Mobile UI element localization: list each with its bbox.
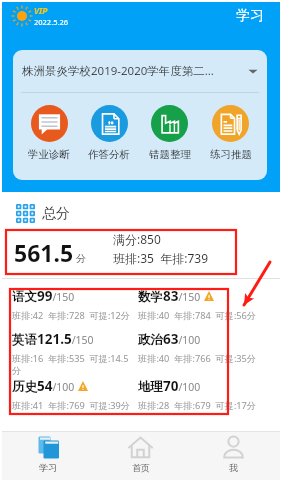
button[interactable]: 练习推题 (200, 105, 261, 161)
button[interactable]: 学业诊断 (19, 105, 79, 161)
staticText: 2022.5.26 (34, 17, 69, 27)
staticText: 561.5 分 (14, 237, 86, 268)
button[interactable]: 地理70/100 (138, 377, 276, 412)
staticText: 我 (229, 462, 238, 473)
staticText: 政治63/100 (138, 330, 201, 348)
button[interactable]: 政治63/100 (138, 330, 276, 365)
staticText: 班排:35 年排:739 (113, 250, 208, 266)
button[interactable]: 英语121.5/150 (12, 330, 134, 377)
staticText: 数学83/150 (138, 287, 201, 305)
staticText: 练习推题 (210, 148, 252, 161)
staticText: 学习 (39, 462, 57, 473)
staticText: 错题整理 (149, 148, 191, 161)
button[interactable]: 我 (187, 432, 280, 480)
button[interactable]: 历史54/100 (12, 377, 134, 412)
staticText: 班排:42 年排:728 可提:12分 (12, 309, 131, 322)
staticText: 英语121.5/150 (12, 330, 94, 348)
button[interactable]: 展开 (247, 65, 259, 77)
staticText: VIP (34, 5, 48, 17)
button[interactable]: 错题整理 (139, 105, 200, 161)
staticText: 班排:16 年排:535 可提:14.5分 (12, 352, 134, 377)
staticText: 班排:28 年排:679 可提:17分 (138, 399, 257, 412)
button[interactable]: 数学83/150 (138, 287, 276, 322)
staticText: 班排:41 年排:769 可提:39分 (12, 399, 131, 412)
staticText: 班排:40 年排:784 可提:56分 (138, 309, 257, 322)
staticText: 满分:850 (113, 231, 161, 247)
button[interactable]: 首页 (94, 432, 187, 480)
staticText: 首页 (132, 462, 150, 473)
button[interactable]: 语文99/150 (12, 287, 134, 322)
staticText: 班排:40 年排:766 可提:35分 (138, 352, 257, 365)
staticText: 总分 (42, 205, 70, 223)
other: 学习 (36, 435, 61, 460)
staticText: 语文99/150 (12, 287, 75, 305)
other: 我 (221, 435, 246, 460)
button[interactable]: 学习 (236, 7, 264, 25)
staticText: 作答分析 (88, 148, 130, 161)
button[interactable]: 学习 (2, 432, 94, 480)
staticText: 学业诊断 (28, 148, 70, 161)
staticText: 历史54/100 (12, 377, 75, 395)
other: 首页 (128, 435, 153, 460)
staticText: 株洲景炎学校2019-2020学年度第二… (22, 63, 241, 79)
staticText: 地理70/100 (138, 377, 201, 395)
button[interactable]: 作答分析 (79, 105, 139, 161)
